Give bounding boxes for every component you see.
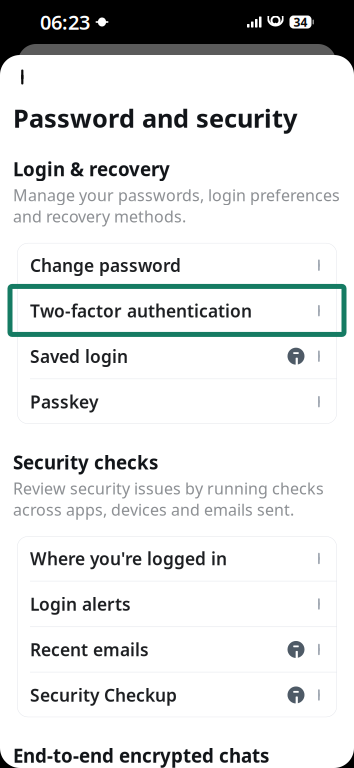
- staticText: Security checks: [13, 450, 158, 475]
- button[interactable]: Two-factor authentication: [17, 288, 337, 333]
- staticText: 06:23: [40, 9, 90, 35]
- button[interactable]: Back: [0, 55, 354, 99]
- button[interactable]: Saved login: [17, 334, 337, 378]
- button[interactable]: Login alerts: [17, 582, 337, 626]
- button[interactable]: Security Checkup: [17, 673, 337, 717]
- staticText: Two-factor authentication: [30, 299, 252, 322]
- button[interactable]: Change password: [17, 243, 337, 287]
- staticText: Review security issues by running checks…: [13, 478, 324, 520]
- staticText: 34: [293, 14, 307, 30]
- staticText: Change password: [30, 254, 181, 277]
- button[interactable]: Where you're logged in: [17, 536, 337, 581]
- button[interactable]: Passkey: [17, 379, 337, 424]
- staticText: Recent emails: [30, 638, 149, 661]
- staticText: Manage your passwords, login preferences…: [13, 184, 340, 227]
- staticText: End-to-end encrypted chats: [13, 743, 269, 768]
- staticText: Security Checkup: [30, 683, 177, 706]
- staticText: Saved login: [30, 345, 128, 368]
- staticText: Login & recovery: [13, 157, 170, 181]
- staticText: Password and security: [13, 101, 297, 135]
- staticText: Login alerts: [30, 592, 131, 615]
- staticText: Where you're logged in: [30, 547, 227, 570]
- staticText: Passkey: [30, 390, 98, 413]
- button[interactable]: Recent emails: [17, 627, 337, 672]
